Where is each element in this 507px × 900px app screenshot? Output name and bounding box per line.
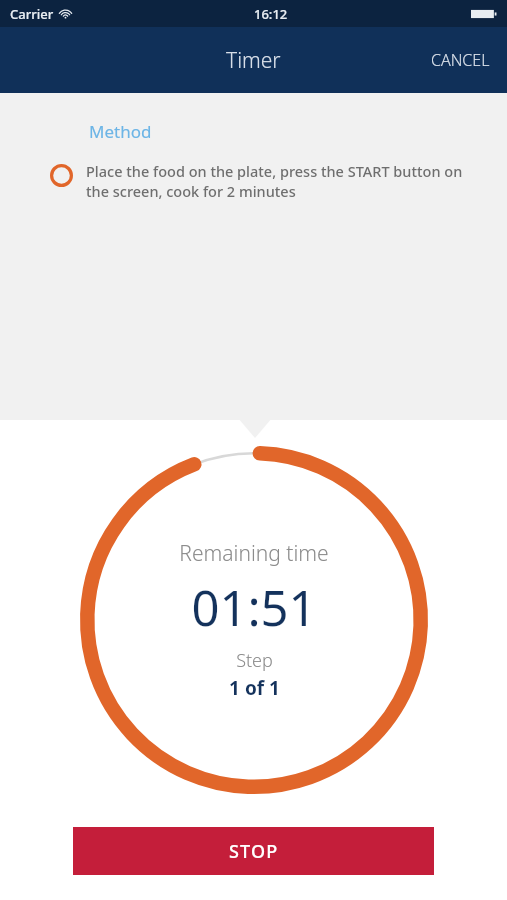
staticText: STOP	[229, 839, 279, 864]
staticText: 1 of 1	[229, 675, 280, 701]
button[interactable]: STOP	[73, 827, 434, 875]
staticText: Timer	[226, 46, 281, 75]
button[interactable]: CANCEL	[414, 35, 507, 85]
staticText: Place the food on the plate, press the S…	[86, 161, 479, 201]
staticText: Method	[89, 120, 152, 143]
staticText: Remaining time	[179, 539, 329, 568]
button[interactable]: Place the food on the plate, press the S…	[50, 161, 479, 201]
staticText: 16:12	[254, 5, 288, 23]
staticText: Carrier	[10, 5, 54, 23]
staticText: Step	[236, 648, 273, 673]
staticText: 01:51	[191, 574, 317, 641]
staticText: CANCEL	[431, 49, 490, 71]
